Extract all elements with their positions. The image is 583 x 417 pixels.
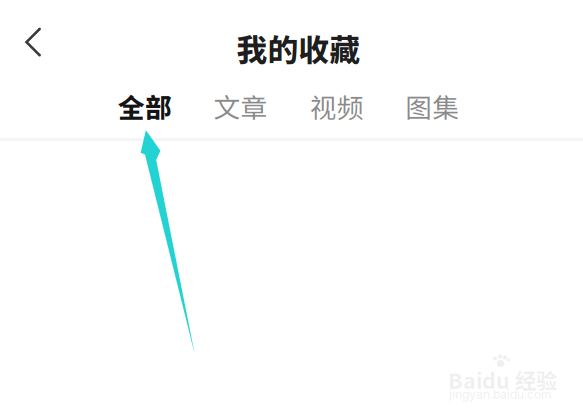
button[interactable]: 视频	[299, 84, 375, 128]
staticText: jingyan.baidu.com	[449, 387, 552, 401]
staticText: 我的收藏	[236, 26, 360, 70]
staticText: 视频	[310, 87, 364, 125]
staticText: 文章	[214, 87, 268, 125]
button[interactable]: 文章	[203, 84, 279, 128]
button[interactable]: 返回	[13, 15, 53, 68]
staticText: Baidu 经验	[448, 364, 557, 395]
staticText: 图集	[405, 87, 459, 125]
staticText: 全部	[118, 87, 172, 125]
button[interactable]: 图集	[394, 84, 470, 128]
button[interactable]: 全部	[107, 84, 183, 128]
